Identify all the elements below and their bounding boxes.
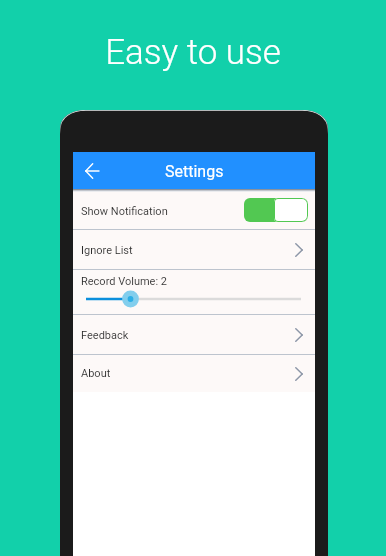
staticText: Settings	[165, 162, 224, 181]
staticText: Ignore List	[81, 244, 133, 257]
button[interactable]: Record Volume: 2	[73, 270, 315, 315]
button[interactable]: Ignore List	[73, 230, 315, 270]
button[interactable]: Show Notification toggle	[244, 198, 308, 222]
button[interactable]: Feedback	[73, 315, 315, 355]
staticText: Record Volume: 2	[81, 275, 168, 288]
staticText: About	[81, 367, 111, 380]
button[interactable]: About	[73, 355, 315, 392]
staticText: Show Notification	[81, 205, 168, 218]
button[interactable]: Show Notification	[73, 192, 315, 230]
button[interactable]: Back	[77, 156, 107, 186]
staticText: Easy to use	[105, 32, 281, 73]
staticText: Feedback	[81, 329, 129, 342]
